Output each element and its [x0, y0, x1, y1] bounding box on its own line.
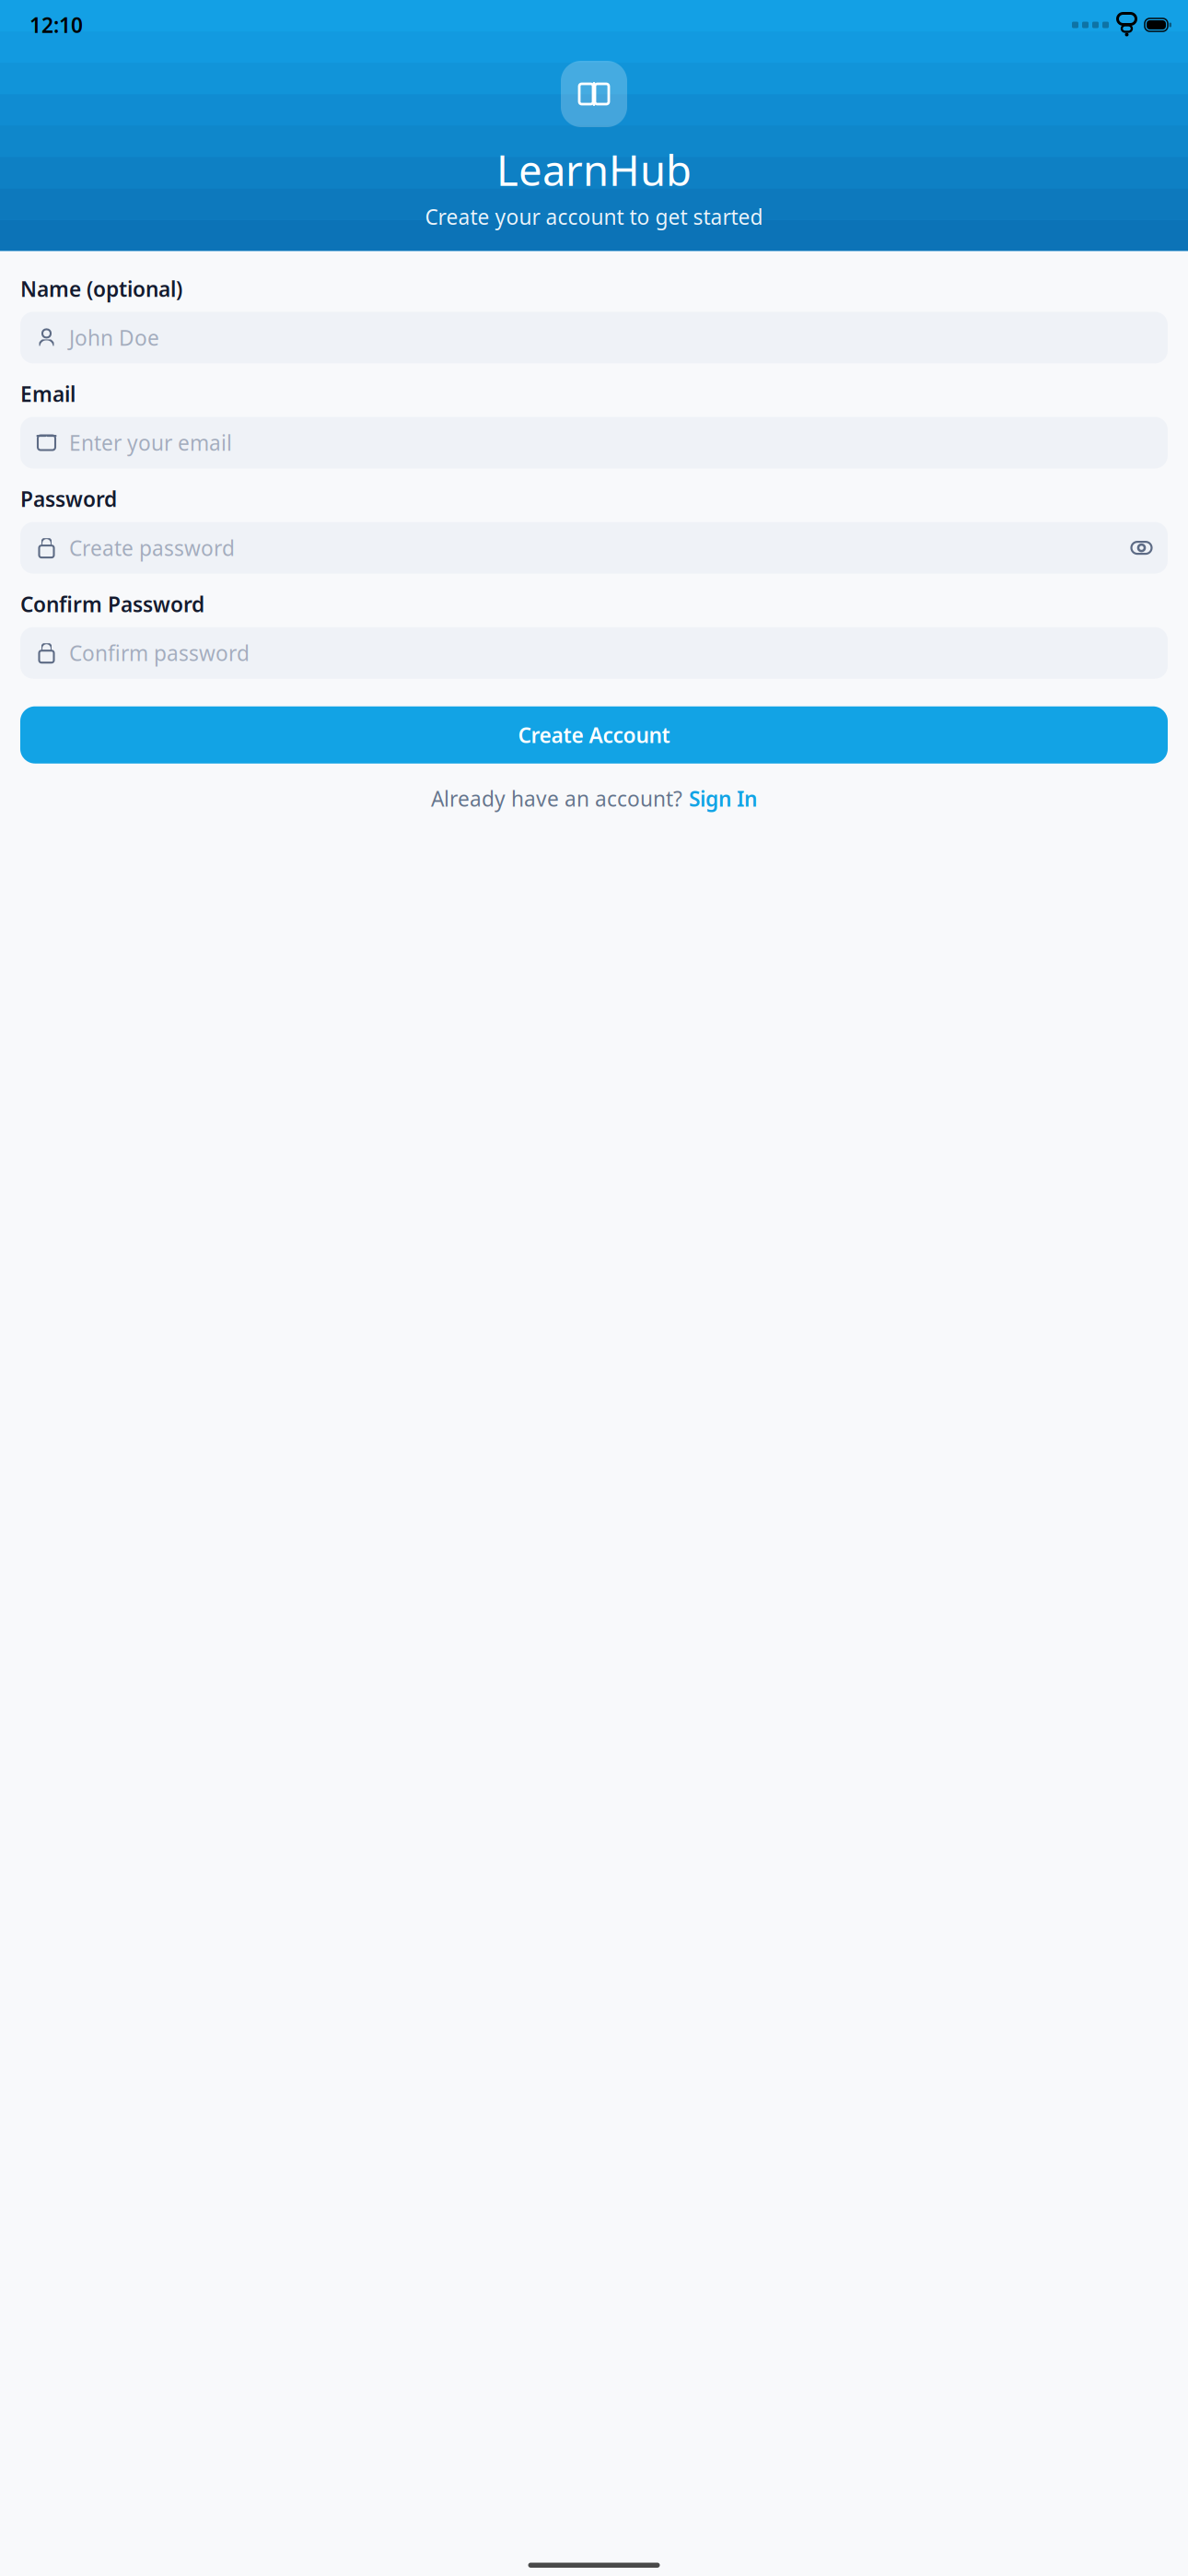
staticText: Email: [20, 380, 76, 408]
staticText: Sign In: [689, 785, 757, 812]
staticText: Create Account: [518, 721, 670, 749]
button[interactable]: Show password: [1130, 538, 1153, 558]
staticText: LearnHub: [496, 142, 692, 197]
staticText: Confirm password: [69, 639, 250, 667]
staticText: Already have an account?: [431, 785, 682, 812]
staticText: John Doe: [69, 324, 159, 351]
staticText: 12:10: [29, 11, 83, 39]
staticText: Name (optional): [20, 275, 182, 303]
staticText: Create password: [69, 534, 235, 562]
button[interactable]: John Doe: [20, 312, 1168, 363]
staticText: Create your account to get started: [425, 203, 763, 231]
staticText: Confirm Password: [20, 590, 204, 618]
button[interactable]: Create Account: [20, 706, 1168, 763]
button[interactable]: Enter your email: [20, 417, 1168, 468]
staticText: Password: [20, 485, 117, 513]
staticText: Enter your email: [69, 429, 232, 457]
button[interactable]: Already have an account?: [20, 784, 1168, 813]
button[interactable]: Confirm password: [20, 627, 1168, 679]
